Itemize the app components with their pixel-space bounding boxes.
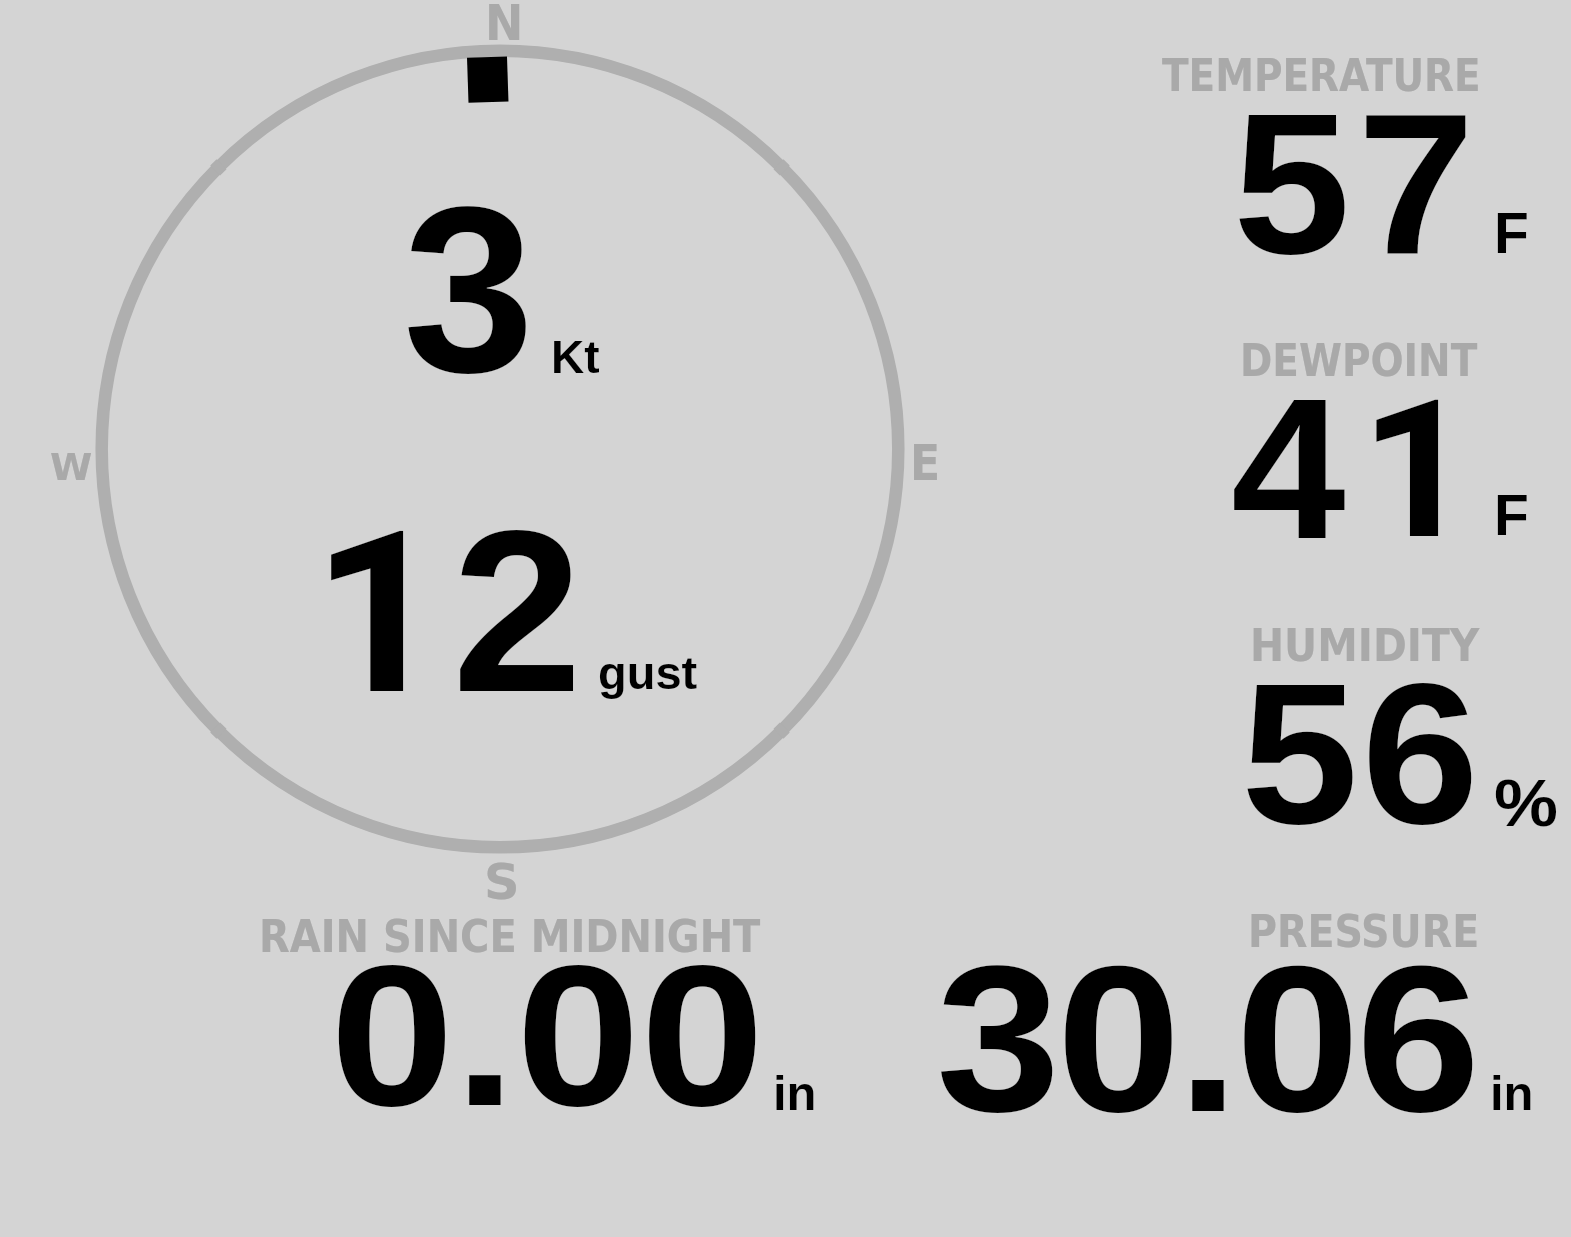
staticText: 0.00	[330, 923, 765, 1148]
button[interactable]: Rain since midnight 0.00 inches	[250, 905, 830, 1120]
staticText: 4	[1231, 356, 1346, 581]
staticText: PRESSURE	[1248, 906, 1480, 957]
button[interactable]: Temperature 57 degrees Fahrenheit	[1150, 45, 1550, 275]
staticText: 56	[1241, 641, 1482, 866]
staticText: TEMPERATURE	[1162, 50, 1481, 101]
staticText: DEWPOINT	[1240, 335, 1478, 386]
staticText: W	[50, 446, 93, 489]
staticText: F	[1494, 483, 1529, 547]
button[interactable]: Pressure 30.06 inches	[900, 900, 1550, 1120]
staticText: S	[484, 854, 520, 911]
staticText: E	[910, 435, 941, 492]
staticText: 1	[312, 483, 446, 746]
staticText: 30.06	[936, 924, 1477, 1155]
staticText: in	[1490, 1066, 1534, 1121]
staticText: 1	[1360, 358, 1475, 583]
staticText: RAIN SINCE MIDNIGHT	[259, 911, 761, 962]
staticText: 2	[452, 483, 583, 740]
button[interactable]: Wind speed and direction	[95, 45, 905, 905]
staticText: 3	[403, 157, 535, 421]
staticText: Kt	[551, 331, 600, 382]
staticText: %	[1494, 766, 1558, 840]
button[interactable]: Dew point 41 degrees Fahrenheit	[1150, 330, 1550, 560]
staticText: in	[773, 1066, 817, 1121]
staticText: N	[485, 0, 523, 52]
staticText: HUMIDITY	[1250, 620, 1480, 671]
button[interactable]: Humidity 56 percent	[1150, 615, 1550, 845]
staticText: gust	[598, 646, 698, 699]
staticText: F	[1494, 201, 1529, 265]
staticText: 57	[1233, 71, 1482, 296]
